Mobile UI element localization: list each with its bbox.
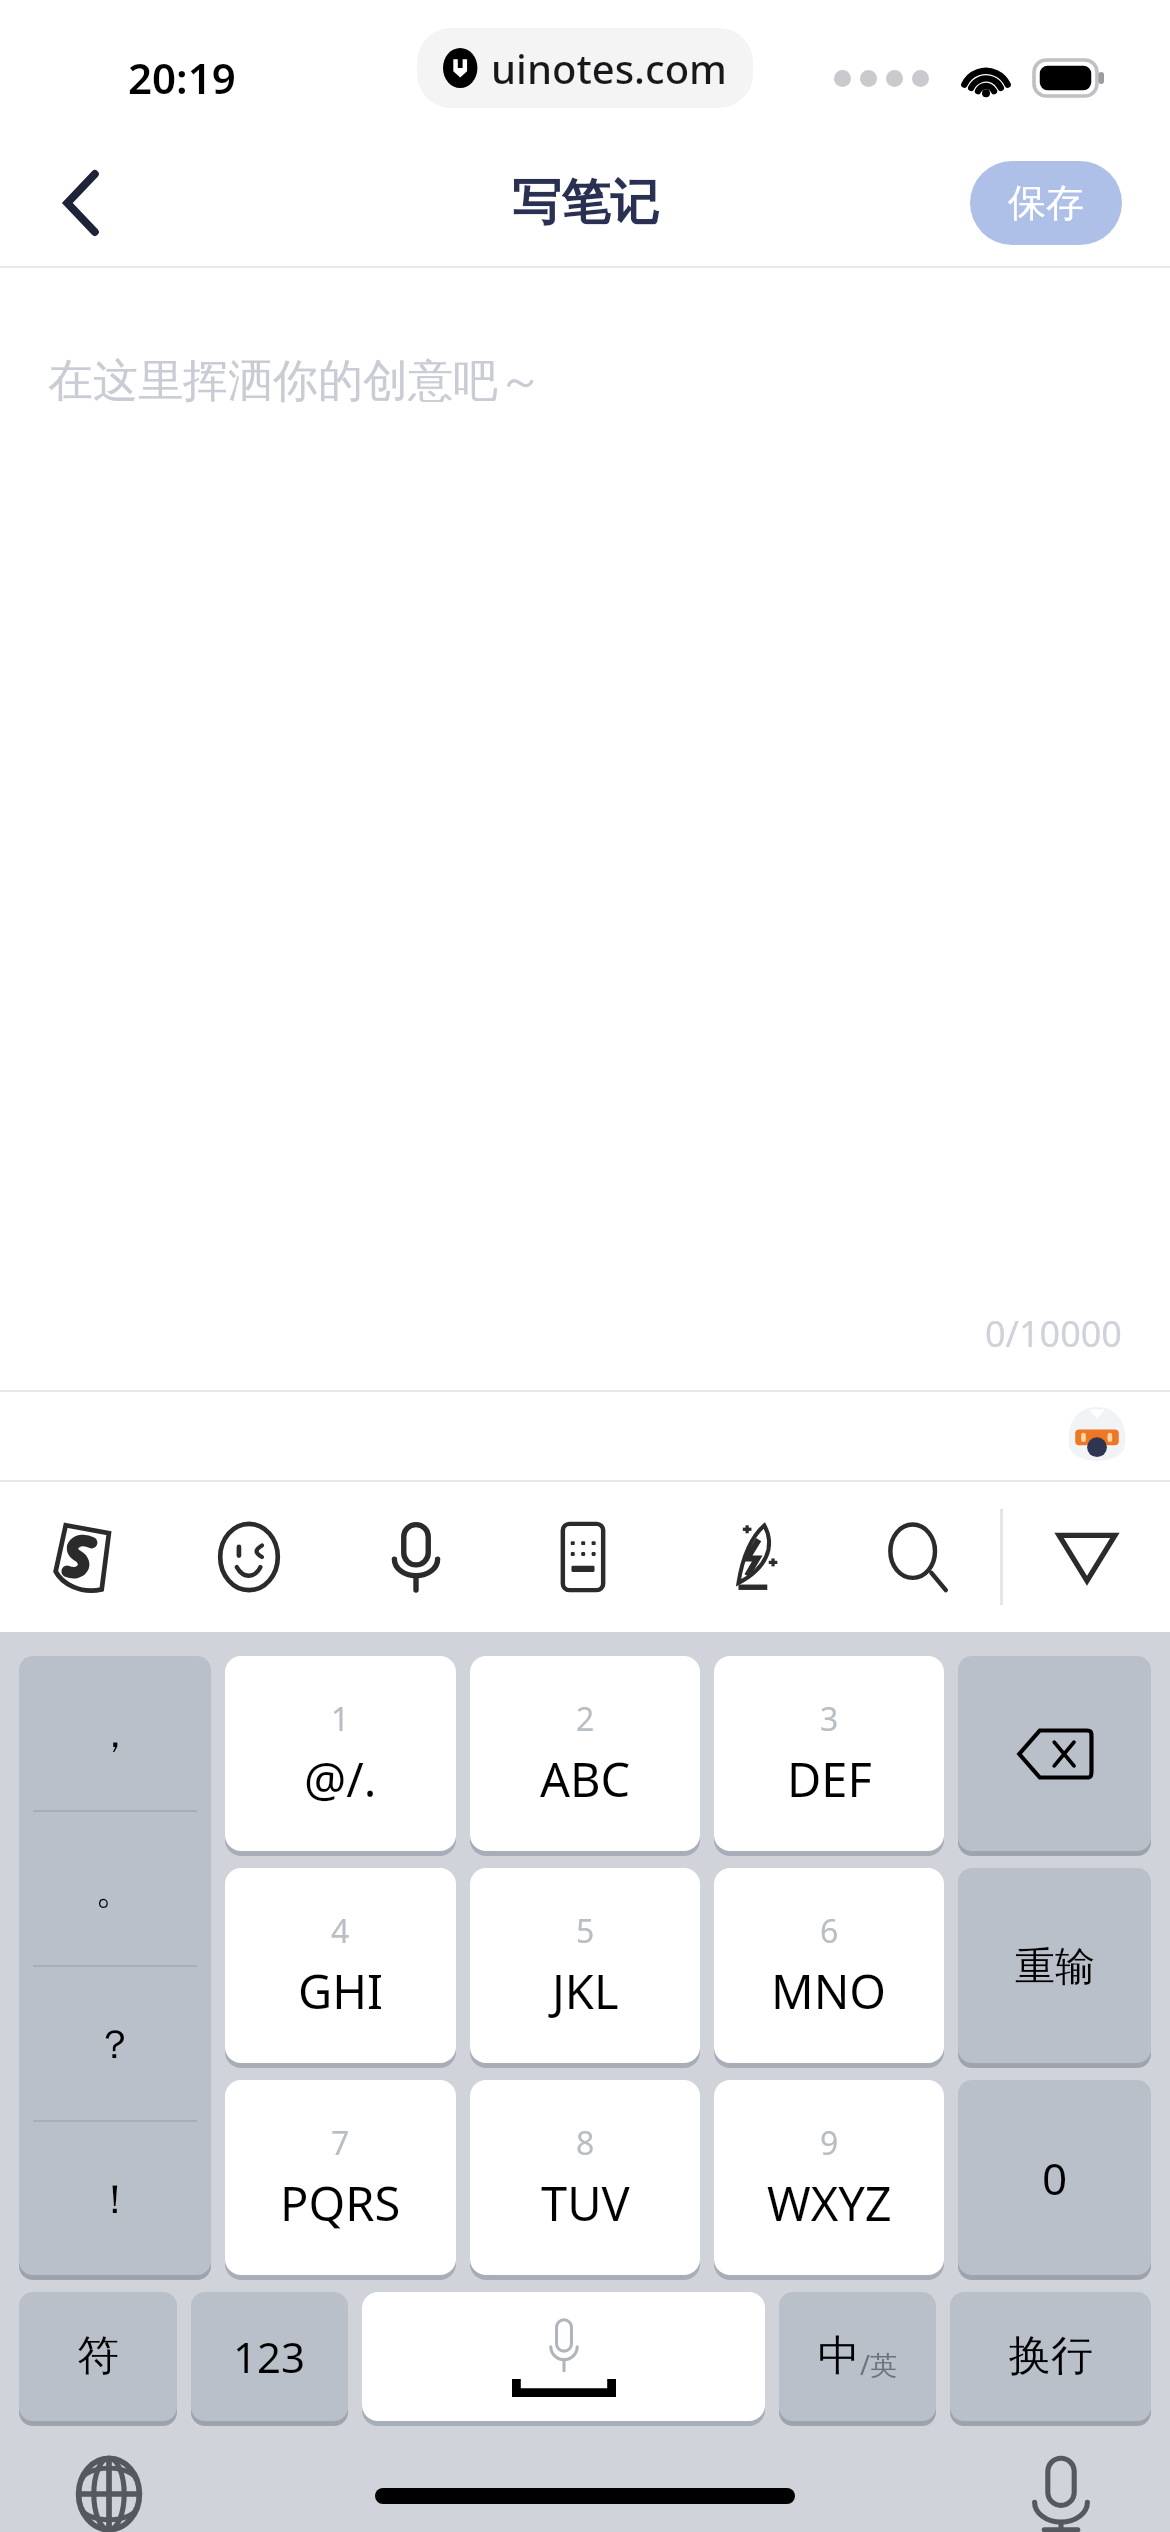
button[interactable]: Delete: [958, 1656, 1151, 1851]
button[interactable]: Hide keyboard: [1003, 1482, 1170, 1632]
button[interactable]: 符: [19, 2292, 177, 2421]
staticText: @/.: [304, 1747, 377, 1811]
button[interactable]: Sogou: [0, 1482, 166, 1632]
button[interactable]: 3: [714, 1656, 944, 1851]
staticText: 5: [576, 1909, 595, 1953]
staticText: 4: [331, 1909, 350, 1953]
staticText: MNO: [771, 1959, 887, 2023]
button[interactable]: ！: [19, 2122, 211, 2275]
button[interactable]: 。: [19, 1812, 211, 1965]
button[interactable]: ？: [19, 1967, 211, 2120]
staticText: 0/10000: [985, 1309, 1122, 1358]
staticText: TUV: [541, 2171, 630, 2235]
staticText: 3: [820, 1697, 839, 1741]
staticText: 1: [331, 1697, 350, 1741]
button[interactable]: 8: [470, 2080, 700, 2275]
button[interactable]: 重输: [958, 1868, 1151, 2063]
button[interactable]: 1: [225, 1656, 456, 1851]
staticText: 。: [95, 1864, 135, 1914]
staticText: 在这里挥洒你的创意吧～: [48, 353, 543, 410]
staticText: ABC: [540, 1747, 631, 1811]
button[interactable]: 在这里挥洒你的创意吧～: [0, 268, 1170, 1390]
staticText: 7: [331, 2121, 350, 2165]
button[interactable]: Emoji: [166, 1482, 332, 1632]
staticText: 保存: [1008, 179, 1084, 227]
staticText: 写笔记: [512, 172, 659, 234]
button[interactable]: Space: [362, 2292, 765, 2421]
button[interactable]: Search: [833, 1482, 1000, 1632]
staticText: ？: [95, 2019, 135, 2069]
staticText: 9: [820, 2121, 839, 2165]
button[interactable]: Back: [34, 155, 130, 251]
button[interactable]: 6: [714, 1868, 944, 2063]
staticText: JKL: [552, 1959, 619, 2023]
staticText: 符: [77, 2330, 119, 2383]
button[interactable]: ，: [19, 1656, 211, 1810]
staticText: 重输: [1015, 1941, 1095, 1991]
staticText: 换行: [1009, 2330, 1093, 2383]
button[interactable]: Dictation: [1018, 2456, 1104, 2532]
staticText: 中: [818, 2330, 860, 2383]
button[interactable]: Voice input: [332, 1482, 499, 1632]
button[interactable]: 9: [714, 2080, 944, 2275]
staticText: 0: [1042, 2148, 1068, 2208]
staticText: 6: [820, 1909, 839, 1953]
button[interactable]: 123: [191, 2292, 348, 2421]
button[interactable]: 换行: [950, 2292, 1151, 2421]
staticText: 123: [233, 2328, 306, 2385]
button[interactable]: 5: [470, 1868, 700, 2063]
staticText: GHI: [298, 1959, 383, 2023]
button[interactable]: 保存: [970, 161, 1122, 245]
button[interactable]: 2: [470, 1656, 700, 1851]
staticText: ，: [95, 1708, 135, 1758]
staticText: /英: [860, 2346, 898, 2383]
button[interactable]: Assistant: [1058, 1397, 1136, 1475]
button[interactable]: 0: [958, 2080, 1151, 2275]
staticText: DEF: [787, 1747, 872, 1811]
staticText: 8: [576, 2121, 595, 2165]
staticText: uinotes.com: [491, 41, 727, 95]
button[interactable]: Keyboard: [499, 1482, 666, 1632]
staticText: 20:19: [128, 49, 236, 106]
staticText: PQRS: [280, 2171, 401, 2235]
button[interactable]: Switch language: [66, 2456, 152, 2532]
staticText: WXYZ: [767, 2171, 892, 2235]
button[interactable]: Handwriting: [666, 1482, 833, 1632]
staticText: 2: [576, 1697, 595, 1741]
button[interactable]: 中: [779, 2292, 936, 2421]
button[interactable]: 4: [225, 1868, 456, 2063]
staticText: ！: [95, 2174, 135, 2224]
button[interactable]: 7: [225, 2080, 456, 2275]
